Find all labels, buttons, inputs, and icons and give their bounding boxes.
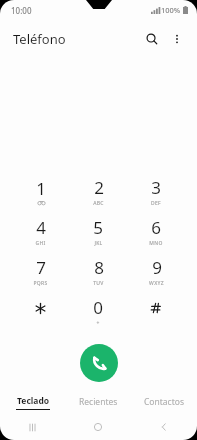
staticText: ABC bbox=[93, 200, 104, 207]
staticText: MNO bbox=[149, 240, 163, 247]
staticText: DEF bbox=[151, 200, 161, 207]
staticText: JKL bbox=[94, 240, 103, 247]
staticText: PQRS bbox=[33, 280, 48, 287]
staticText: 10:00 bbox=[11, 5, 32, 16]
button[interactable] bbox=[127, 291, 185, 331]
button[interactable]: Home bbox=[65, 414, 131, 440]
button[interactable]: Search bbox=[140, 27, 164, 51]
button[interactable]: Call bbox=[80, 344, 118, 382]
staticText: TUV bbox=[93, 280, 104, 287]
staticText: 5 bbox=[93, 216, 103, 239]
button[interactable]: 1 bbox=[12, 171, 69, 211]
button[interactable]: Recents bbox=[0, 414, 65, 440]
staticText: 9 bbox=[152, 256, 162, 279]
button[interactable]: Teclado bbox=[0, 390, 65, 414]
staticText: 1 bbox=[36, 177, 46, 200]
staticText: WXYZ bbox=[149, 280, 164, 287]
button[interactable]: 7 bbox=[12, 251, 69, 291]
button[interactable]: 6 bbox=[127, 211, 185, 251]
button[interactable]: 4 bbox=[12, 211, 69, 251]
staticText: 8 bbox=[94, 256, 104, 279]
staticText: 3 bbox=[151, 176, 161, 199]
staticText: Recientes bbox=[79, 396, 118, 408]
staticText: 4 bbox=[36, 216, 46, 239]
staticText: 2 bbox=[94, 176, 104, 199]
button[interactable]: More options bbox=[165, 27, 189, 51]
staticText: 6 bbox=[151, 216, 161, 239]
button[interactable]: 0 bbox=[69, 291, 127, 331]
staticText: 100% bbox=[161, 5, 181, 15]
button[interactable]: 9 bbox=[127, 251, 185, 291]
button[interactable]: Recientes bbox=[65, 390, 131, 414]
button[interactable]: 5 bbox=[69, 211, 127, 251]
staticText: 7 bbox=[36, 256, 46, 279]
staticText: GHI bbox=[35, 240, 46, 247]
button[interactable]: Back bbox=[131, 414, 197, 440]
staticText: 0 bbox=[93, 296, 103, 319]
staticText: Teclado bbox=[17, 395, 50, 407]
staticText: Contactos bbox=[144, 396, 184, 408]
button[interactable]: 2 bbox=[69, 171, 127, 211]
staticText: + bbox=[96, 320, 100, 327]
button[interactable]: 3 bbox=[127, 171, 185, 211]
button[interactable]: 8 bbox=[69, 251, 127, 291]
button[interactable]: Contactos bbox=[131, 390, 197, 414]
staticText: Teléfono bbox=[13, 30, 66, 48]
button[interactable] bbox=[12, 291, 69, 331]
